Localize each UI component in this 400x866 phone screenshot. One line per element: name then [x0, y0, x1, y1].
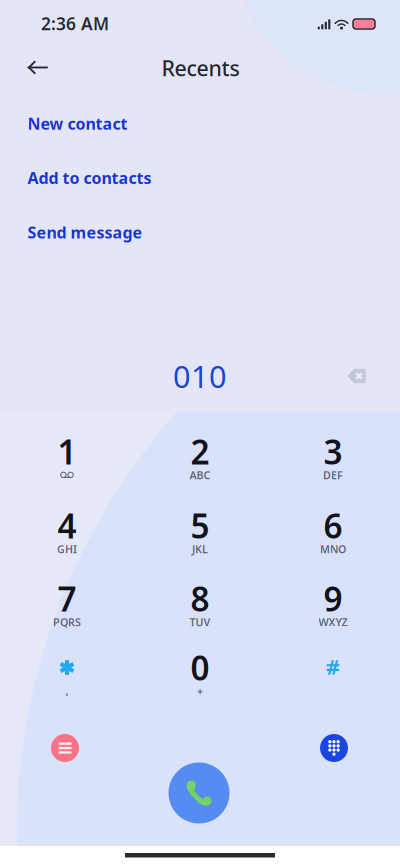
- button[interactable]: 0: [140, 641, 260, 705]
- button[interactable]: 1: [7, 425, 127, 489]
- button[interactable]: 6: [273, 499, 393, 563]
- staticText: 0: [190, 645, 209, 690]
- button[interactable]: 8: [140, 572, 260, 636]
- staticText: Add to contacts: [27, 167, 151, 188]
- button[interactable]: 4: [7, 499, 127, 563]
- staticText: ,: [65, 684, 68, 698]
- staticText: WXYZ: [318, 615, 347, 629]
- button[interactable]: 7: [7, 572, 127, 636]
- button[interactable]: Call log: [51, 734, 79, 762]
- button[interactable]: New contact: [0, 106, 400, 142]
- staticText: 8: [190, 576, 209, 621]
- button[interactable]: Back: [15, 45, 59, 89]
- staticText: PQRS: [53, 615, 81, 629]
- staticText: TUV: [189, 615, 210, 629]
- staticText: 5: [190, 503, 209, 548]
- button[interactable]: 2: [140, 425, 260, 489]
- staticText: 1: [57, 429, 76, 474]
- staticText: 2:36 AM: [41, 12, 109, 35]
- staticText: 010: [173, 356, 227, 396]
- staticText: 2: [190, 429, 209, 474]
- button[interactable]: Add to contacts: [0, 160, 400, 196]
- staticText: +: [197, 684, 203, 698]
- button[interactable]: Delete: [334, 356, 378, 396]
- staticText: GHI: [57, 542, 77, 556]
- button[interactable]: Call: [168, 762, 229, 823]
- staticText: ABC: [189, 468, 210, 482]
- staticText: Recents: [161, 54, 239, 82]
- button[interactable]: Dialpad: [320, 734, 348, 762]
- staticText: JKL: [192, 542, 208, 556]
- button[interactable]: 5: [140, 499, 260, 563]
- button[interactable]: Send message: [0, 214, 400, 250]
- staticText: 9: [323, 576, 342, 621]
- staticText: MNO: [320, 542, 346, 556]
- button[interactable]: 3: [273, 425, 393, 489]
- staticText: 6: [323, 503, 342, 548]
- staticText: 7: [57, 576, 76, 621]
- staticText: New contact: [27, 113, 127, 134]
- button[interactable]: [273, 641, 393, 705]
- button[interactable]: 9: [273, 572, 393, 636]
- staticText: 4: [57, 503, 76, 548]
- button[interactable]: ,: [7, 641, 127, 705]
- staticText: Send message: [27, 222, 142, 243]
- staticText: DEF: [323, 468, 343, 482]
- staticText: 3: [323, 429, 342, 474]
